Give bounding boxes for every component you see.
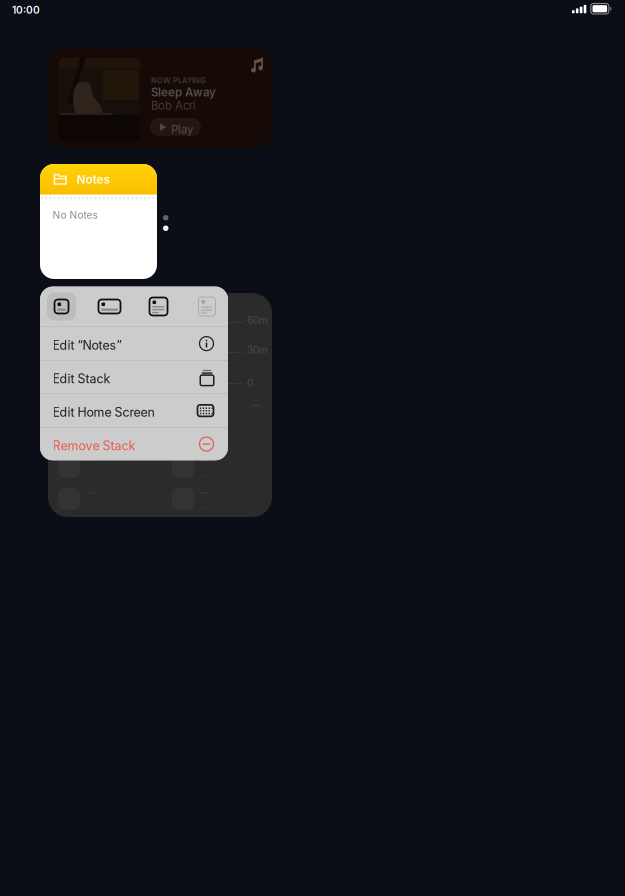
staticText: Remove Stack — [52, 438, 135, 453]
button[interactable]: Edit “Notes” — [40, 327, 228, 360]
button[interactable]: Remove Stack — [40, 428, 228, 460]
staticText: Sleep Away — [151, 85, 216, 99]
staticText: 0 — [247, 377, 253, 389]
button[interactable]: Edit Home Screen — [40, 394, 228, 427]
staticText: -- — [86, 454, 94, 466]
button[interactable]: Small widget size — [47, 292, 76, 320]
staticText: 10:00 — [12, 4, 40, 16]
staticText: Screen Time — [62, 304, 122, 316]
staticText: Bob Acri — [151, 99, 196, 113]
staticText: Edit “Notes” — [52, 338, 121, 353]
button[interactable]: Large widget size — [144, 292, 173, 320]
staticText: Edit Home Screen — [52, 405, 154, 420]
staticText: Notes — [76, 173, 109, 186]
staticText: NOW PLAYING — [151, 76, 206, 85]
button[interactable]: Play — [150, 118, 201, 136]
staticText: 30m — [247, 344, 268, 356]
staticText: -- — [86, 486, 94, 498]
staticText: Play — [171, 123, 194, 136]
button[interactable]: Edit Stack — [40, 361, 228, 393]
staticText: No Notes — [52, 209, 97, 221]
staticText: 60m — [247, 314, 268, 326]
button[interactable]: Extra large widget size — [192, 292, 221, 320]
staticText: Edit Stack — [52, 371, 110, 386]
button[interactable]: Medium widget size — [95, 292, 124, 320]
staticText: -- — [200, 454, 208, 466]
staticText: -- — [251, 399, 261, 411]
staticText: -- — [200, 486, 208, 498]
